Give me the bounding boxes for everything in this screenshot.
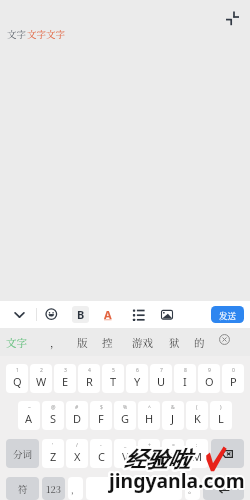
staticText: jingyanla.com [108, 468, 244, 494]
button[interactable]: @ [42, 401, 64, 430]
button[interactable]: Hide keyboard [8, 301, 30, 328]
staticText: G [121, 411, 130, 426]
staticText: ^ [148, 404, 151, 411]
staticText: I [183, 374, 187, 389]
button[interactable]: 控 [102, 328, 113, 356]
staticText: jingyanla.com [109, 469, 245, 495]
staticText: 7 [160, 367, 163, 374]
button[interactable]: 5 [102, 364, 124, 393]
staticText: B [77, 307, 85, 322]
staticText: A [104, 307, 112, 322]
staticText: jingyanla.com [109, 467, 245, 493]
staticText: @ [51, 404, 56, 411]
button[interactable]: ) [210, 401, 232, 430]
button[interactable]: ， [68, 477, 83, 500]
button[interactable]: / [66, 439, 88, 468]
button[interactable]: A [99, 305, 117, 324]
button[interactable]: Bullet list [128, 304, 148, 326]
staticText: 经验啦 [124, 448, 190, 476]
button[interactable]: - [90, 439, 112, 468]
button[interactable]: Space [86, 477, 182, 500]
button[interactable]: B [72, 306, 89, 323]
button[interactable]: Close candidates [216, 331, 232, 347]
button[interactable]: 的 [194, 328, 205, 356]
button[interactable]: 8 [174, 364, 196, 393]
staticText: 经验啦 [125, 446, 191, 474]
staticText: A [25, 411, 33, 426]
staticText: jingyanla.com [109, 468, 245, 494]
staticText: O [205, 374, 214, 389]
staticText: 经验啦 [122, 445, 188, 473]
button[interactable]: + [138, 439, 160, 468]
staticText: 经验啦 [126, 446, 192, 474]
button[interactable]: ( [186, 401, 208, 430]
staticText: % [123, 404, 128, 411]
staticText: + [148, 442, 151, 449]
staticText: 经验啦 [124, 444, 190, 472]
button[interactable]: = [162, 439, 184, 468]
staticText: 控 [102, 335, 113, 350]
button[interactable]: 2 [30, 364, 52, 393]
staticText: jingyanla.com [107, 467, 243, 493]
button[interactable]: 分词 [6, 439, 39, 468]
button[interactable]: % [114, 401, 136, 430]
staticText: jingyanla.com [109, 467, 245, 493]
button[interactable]: 123 [42, 477, 65, 500]
button[interactable]: 。 [185, 477, 200, 500]
button[interactable]: $ [90, 401, 112, 430]
button[interactable]: _ [114, 439, 136, 468]
staticText: jingyanla.com [109, 468, 245, 494]
staticText: jingyanla.com [107, 467, 243, 493]
button[interactable]: ' [42, 439, 64, 468]
button[interactable]: 符 [6, 477, 39, 500]
staticText: 经验啦 [125, 447, 191, 475]
staticText: ' [52, 442, 54, 449]
button[interactable]: ^ [138, 401, 160, 430]
button[interactable]: Emoji [41, 304, 63, 326]
button[interactable]: 狱 [169, 328, 180, 356]
staticText: jingyanla.com [110, 467, 246, 493]
button[interactable]: 游戏 [132, 328, 153, 356]
staticText: $ [100, 404, 103, 411]
staticText: jingyanla.com [110, 468, 246, 494]
staticText: R [86, 374, 93, 389]
staticText: 经验啦 [125, 445, 191, 473]
button[interactable]: Enter [203, 477, 244, 500]
button[interactable]: : [186, 439, 208, 468]
staticText: P [230, 374, 237, 389]
staticText: N [169, 449, 178, 464]
staticText: 狱 [169, 335, 180, 350]
staticText: jingyanla.com [108, 466, 244, 492]
button[interactable]: 0 [222, 364, 244, 393]
button[interactable]: ~ [18, 401, 40, 430]
staticText: 经验啦 [125, 447, 191, 475]
button[interactable]: Backspace [211, 439, 244, 468]
button[interactable]: Collapse [221, 7, 244, 30]
staticText: 文字文字 [27, 27, 66, 41]
button[interactable]: ， [50, 328, 61, 356]
button[interactable]: 版 [77, 328, 88, 356]
staticText: ( [196, 404, 198, 411]
button[interactable]: 3 [54, 364, 76, 393]
staticText: L [218, 411, 224, 426]
button[interactable]: 4 [78, 364, 100, 393]
staticText: 经验啦 [122, 446, 188, 474]
button[interactable]: 发送 [211, 306, 244, 323]
button[interactable]: Insert image [157, 304, 177, 326]
staticText: jingyanla.com [108, 469, 244, 495]
staticText: 游戏 [132, 335, 153, 350]
staticText: Z [50, 449, 57, 464]
button[interactable]: # [66, 401, 88, 430]
staticText: 经验啦 [125, 445, 191, 473]
button[interactable]: & [162, 401, 184, 430]
button[interactable]: 7 [150, 364, 172, 393]
staticText: ， [50, 335, 61, 350]
button[interactable]: 1 [6, 364, 28, 393]
staticText: 4 [88, 367, 91, 374]
staticText: 经验啦 [123, 447, 189, 475]
button[interactable]: 文字 [7, 27, 66, 41]
button[interactable]: 9 [198, 364, 220, 393]
button[interactable]: 6 [126, 364, 148, 393]
button[interactable]: 文字 [6, 328, 27, 356]
staticText: 经验啦 [125, 447, 191, 475]
